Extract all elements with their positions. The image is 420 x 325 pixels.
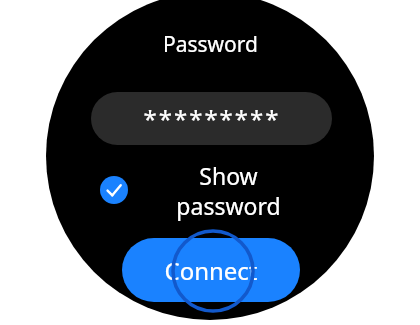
other: Show password checkbox, checked bbox=[100, 176, 128, 204]
button[interactable]: Connect bbox=[122, 238, 300, 302]
button[interactable]: Show password checkbox, checked bbox=[100, 160, 320, 232]
staticText: ********* bbox=[143, 102, 281, 135]
staticText: Password bbox=[163, 30, 258, 59]
staticText: Show password bbox=[176, 160, 281, 221]
staticText: Connect bbox=[164, 254, 258, 287]
button[interactable]: ********* bbox=[91, 92, 332, 145]
